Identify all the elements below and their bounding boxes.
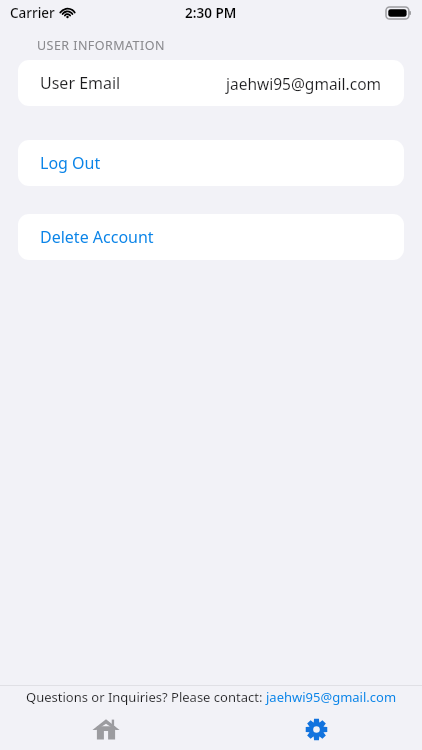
button[interactable]: jaehwi95@gmail.com (266, 688, 397, 706)
button[interactable]: Log Out (18, 140, 404, 186)
button[interactable]: Delete Account (18, 214, 404, 260)
staticText: Carrier (10, 4, 55, 22)
staticText: Questions or Inquiries? Please contact: (26, 688, 266, 706)
staticText: USER INFORMATION (37, 37, 165, 54)
button[interactable]: Settings (211, 708, 422, 750)
button[interactable]: Home (0, 708, 211, 750)
staticText: Delete Account (40, 226, 154, 248)
staticText: jaehwi95@gmail.com (226, 73, 382, 94)
staticText: User Email (40, 72, 121, 94)
staticText: Log Out (40, 152, 101, 174)
staticText: 2:30 PM (185, 4, 237, 22)
button[interactable]: User Email (18, 60, 404, 106)
